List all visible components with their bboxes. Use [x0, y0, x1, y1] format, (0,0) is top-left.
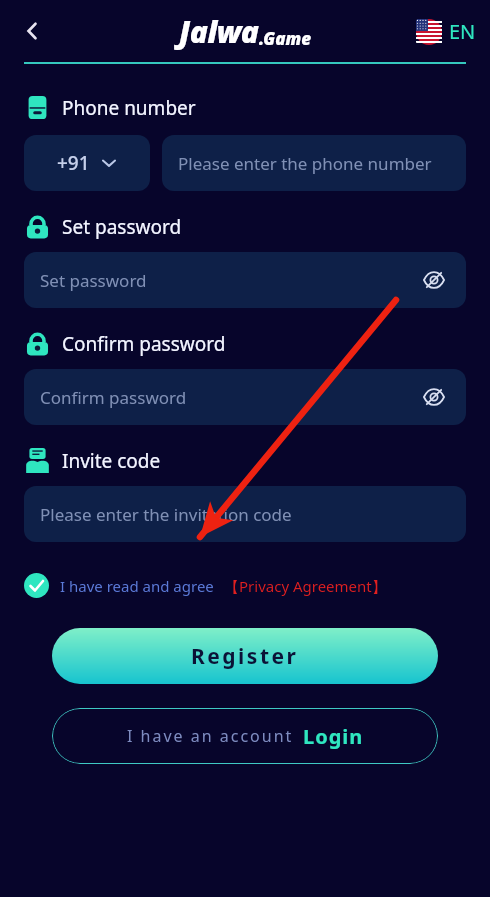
button[interactable]: Show password — [414, 377, 454, 417]
staticText: Please enter the phone number — [178, 152, 432, 175]
staticText: Register — [191, 642, 299, 671]
button[interactable]: +91 — [24, 135, 150, 191]
staticText: Confirm password — [40, 386, 187, 409]
button[interactable]: Register — [52, 628, 438, 684]
button[interactable]: EN — [414, 14, 478, 49]
staticText: Phone number — [62, 95, 196, 121]
staticText: I have read and agree — [60, 576, 214, 596]
button[interactable]: Please enter the phone number — [162, 135, 466, 191]
button[interactable]: Set password — [24, 252, 466, 308]
staticText: Set password — [40, 269, 147, 292]
button[interactable]: Show password — [414, 260, 454, 300]
staticText: I have an account — [127, 725, 294, 747]
staticText: Set password — [62, 214, 182, 240]
staticText: +91 — [57, 150, 90, 176]
staticText: Jalwa — [179, 11, 259, 52]
staticText: EN — [449, 18, 476, 45]
staticText: .Game — [259, 27, 312, 50]
button[interactable]: I have read and agree — [24, 570, 387, 601]
staticText: Confirm password — [62, 331, 226, 357]
button[interactable]: Back — [10, 9, 54, 53]
staticText: 【Privacy Agreement】 — [224, 576, 387, 596]
button[interactable]: I have an account — [52, 708, 438, 764]
button[interactable]: Please enter the invitation code — [24, 486, 466, 542]
staticText: Please enter the invitation code — [40, 503, 292, 526]
staticText: Invite code — [62, 448, 161, 474]
staticText: Login — [303, 723, 364, 750]
button[interactable]: Confirm password — [24, 369, 466, 425]
